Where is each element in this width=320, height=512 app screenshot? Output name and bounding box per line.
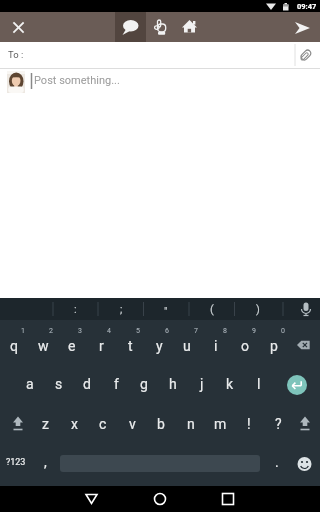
button[interactable]: f [102, 374, 130, 394]
button[interactable]: ; [107, 299, 135, 319]
button[interactable]: x [60, 414, 88, 434]
staticText: 0 [281, 327, 285, 335]
button[interactable]: g [130, 374, 158, 394]
staticText: m [214, 416, 227, 432]
staticText: w [38, 338, 49, 354]
button[interactable]: n [177, 414, 205, 434]
button[interactable]: k [216, 374, 244, 394]
button[interactable]: v [118, 414, 146, 434]
staticText: b [157, 416, 165, 432]
button[interactable]: r [87, 336, 115, 356]
staticText: v [129, 416, 136, 432]
staticText: 6 [165, 327, 169, 335]
button[interactable]: ( [198, 299, 226, 319]
staticText: i [214, 338, 218, 354]
staticText: h [169, 376, 177, 392]
button[interactable]: , [31, 452, 59, 472]
button[interactable]: u [173, 336, 201, 356]
staticText: 4 [107, 327, 111, 335]
staticText: ) [256, 303, 260, 316]
button[interactable] [176, 12, 206, 42]
staticText: j [200, 376, 204, 392]
button[interactable]: ?123 [2, 452, 30, 472]
staticText: 09:47 [297, 2, 317, 11]
staticText: 5 [136, 327, 140, 335]
button[interactable] [292, 450, 317, 475]
button[interactable]: ! [235, 414, 263, 434]
staticText: 3 [78, 327, 82, 335]
staticText: " [164, 305, 168, 318]
button[interactable]: . [263, 452, 291, 472]
staticText: c [99, 416, 107, 432]
button[interactable] [213, 486, 243, 512]
button[interactable]: t [116, 336, 144, 356]
staticText: a [26, 376, 34, 392]
button[interactable]: c [89, 414, 117, 434]
button[interactable]: z [31, 414, 59, 434]
button[interactable] [115, 12, 146, 42]
button[interactable]: s [45, 374, 73, 394]
staticText: ! [247, 416, 251, 432]
button[interactable]: j [188, 374, 216, 394]
button[interactable]: " [152, 301, 180, 321]
staticText: p [270, 338, 278, 354]
button[interactable] [3, 409, 33, 439]
staticText: ?123 [6, 457, 26, 468]
button[interactable] [288, 12, 320, 42]
button[interactable] [76, 486, 106, 512]
staticText: r [99, 338, 104, 354]
button[interactable]: ? [264, 414, 292, 434]
staticText: g [140, 376, 148, 392]
staticText: y [156, 338, 163, 354]
button[interactable] [294, 298, 320, 320]
staticText: o [241, 338, 249, 354]
staticText: 9 [252, 327, 256, 335]
button[interactable]: y [145, 336, 173, 356]
staticText: k [226, 376, 234, 392]
staticText: d [83, 376, 91, 392]
staticText: ; [120, 303, 123, 316]
staticText: s [55, 376, 63, 392]
button[interactable]: p [260, 336, 288, 356]
staticText: q [10, 338, 18, 354]
staticText: To : [8, 49, 24, 60]
button[interactable]: m [206, 414, 234, 434]
staticText: t [128, 338, 133, 354]
staticText: u [183, 338, 191, 354]
button[interactable] [286, 328, 316, 358]
button[interactable]: a [16, 374, 44, 394]
button[interactable]: q [0, 336, 28, 356]
staticText: 8 [223, 327, 227, 335]
button[interactable]: : [61, 299, 89, 319]
button[interactable]: d [73, 374, 101, 394]
staticText: . [275, 454, 279, 470]
staticText: ? [275, 416, 282, 432]
staticText: e [68, 338, 76, 354]
staticText: ( [210, 303, 214, 316]
staticText: x [71, 416, 78, 432]
button[interactable]: To : [0, 42, 320, 68]
button[interactable]: l [245, 374, 273, 394]
button[interactable]: h [159, 374, 187, 394]
button[interactable] [296, 43, 320, 67]
staticText: 7 [194, 327, 198, 335]
button[interactable] [287, 375, 307, 395]
button[interactable]: e [58, 336, 86, 356]
staticText: f [114, 376, 119, 392]
button[interactable]: i [202, 336, 230, 356]
button[interactable] [145, 486, 175, 512]
staticText: l [257, 376, 261, 392]
button[interactable] [290, 409, 320, 439]
staticText: Post something... [34, 74, 120, 87]
button[interactable] [146, 12, 176, 42]
staticText: : [74, 303, 77, 316]
staticText: n [187, 416, 195, 432]
button[interactable]: w [29, 336, 57, 356]
button[interactable] [0, 12, 37, 42]
button[interactable]: o [231, 336, 259, 356]
button[interactable]: ) [244, 299, 272, 319]
button[interactable]: b [147, 414, 175, 434]
button[interactable]: Post something... [0, 69, 320, 103]
staticText: 1 [21, 327, 25, 335]
